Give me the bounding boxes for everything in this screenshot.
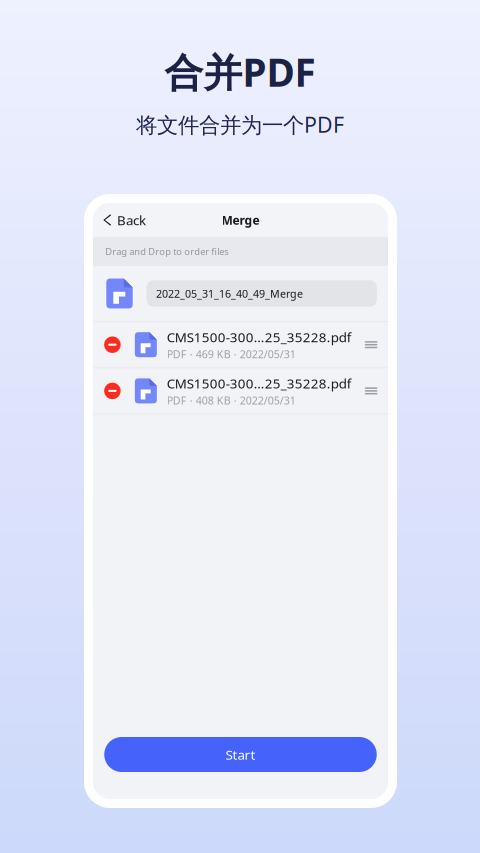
button[interactable]: Back (103, 206, 151, 234)
staticText: Merge (221, 212, 259, 228)
staticText: 2022_05_31_16_40_49_Merge (156, 286, 303, 301)
staticText: 合并PDF (164, 46, 315, 97)
staticText: PDF · 408 KB · 2022/05/31 (167, 393, 296, 407)
button[interactable]: CMS1500-300…25_35228.pdf (93, 368, 388, 413)
button[interactable]: Start (104, 737, 377, 772)
staticText: CMS1500-300…25_35228.pdf (167, 328, 352, 346)
staticText: Back (117, 211, 146, 229)
button[interactable]: CMS1500-300…25_35228.pdf (93, 322, 388, 367)
staticText: Drag and Drop to order files (105, 245, 228, 258)
staticText: 将文件合并为一个PDF (136, 110, 344, 139)
staticText: PDF · 469 KB · 2022/05/31 (167, 347, 296, 361)
staticText: CMS1500-300…25_35228.pdf (167, 374, 352, 392)
staticText: Start (225, 746, 255, 763)
